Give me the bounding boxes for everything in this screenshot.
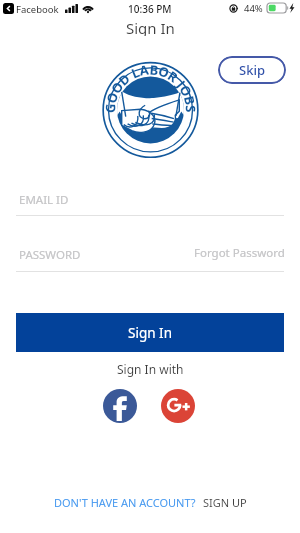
staticText: PASSWORD xyxy=(19,247,81,263)
button[interactable]: Back to Facebook xyxy=(3,3,14,14)
staticText: 10:36 PM xyxy=(128,2,172,16)
button[interactable]: Forgot Password xyxy=(194,245,285,261)
staticText: EMAIL ID xyxy=(19,192,69,208)
staticText: Skip xyxy=(239,61,265,79)
button[interactable]: Sign in with Google Plus xyxy=(161,389,195,423)
button[interactable]: Skip xyxy=(218,56,286,84)
staticText: Sign In xyxy=(128,324,172,342)
staticText: 44% xyxy=(244,2,263,15)
staticText: Facebook xyxy=(16,3,59,16)
staticText: Sign In with xyxy=(117,361,184,377)
button[interactable]: Sign In xyxy=(16,313,284,352)
button[interactable]: Sign in with Facebook xyxy=(103,389,137,423)
button[interactable]: DON'T HAVE AN ACCOUNT? xyxy=(54,495,196,510)
staticText: Sign In xyxy=(126,18,175,36)
button[interactable]: SIGN UP xyxy=(203,495,247,510)
